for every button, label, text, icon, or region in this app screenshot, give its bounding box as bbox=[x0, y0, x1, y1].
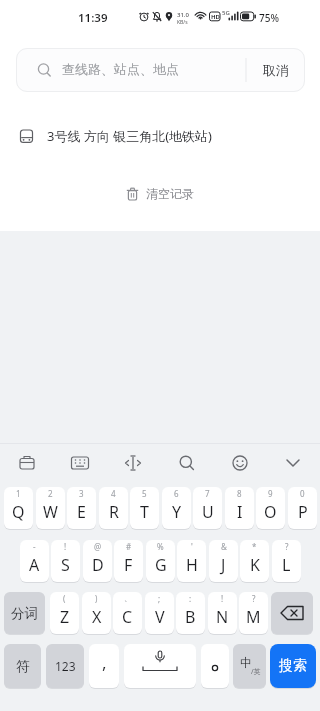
staticText: ! bbox=[64, 541, 67, 552]
staticText: 7 bbox=[205, 488, 210, 499]
staticText: ; bbox=[158, 593, 161, 604]
staticText: N bbox=[216, 606, 229, 628]
staticText: Q bbox=[12, 501, 25, 523]
button[interactable] bbox=[124, 644, 196, 688]
button[interactable]: & bbox=[209, 540, 238, 582]
staticText: * bbox=[252, 541, 257, 552]
staticText: 3号线 方向 银三角北(地铁站) bbox=[47, 127, 212, 145]
staticText: M bbox=[246, 606, 261, 628]
staticText: @ bbox=[94, 541, 102, 552]
staticText: F bbox=[124, 554, 133, 576]
staticText: - bbox=[33, 541, 36, 552]
staticText: 5 bbox=[142, 488, 147, 499]
staticText: T bbox=[140, 501, 149, 523]
button[interactable]: 中 bbox=[233, 644, 266, 688]
button[interactable]: 7 bbox=[193, 487, 222, 529]
staticText: HD bbox=[211, 13, 220, 21]
button[interactable]: 9 bbox=[256, 487, 285, 529]
staticText: J bbox=[221, 554, 226, 576]
button[interactable]: 2 bbox=[36, 487, 65, 529]
staticText: 查线路、站点、地点 bbox=[62, 61, 179, 77]
staticText: 3 bbox=[79, 488, 84, 499]
button[interactable]: * bbox=[240, 540, 269, 582]
staticText: B bbox=[185, 606, 196, 628]
staticText: % bbox=[157, 541, 164, 552]
staticText: 1 bbox=[16, 488, 21, 499]
button[interactable]: 3 bbox=[67, 487, 96, 529]
button[interactable]: ; bbox=[145, 592, 174, 634]
staticText: 中 bbox=[240, 655, 252, 670]
button[interactable]: 搜索 bbox=[270, 644, 316, 688]
button[interactable]: ! bbox=[208, 592, 237, 634]
staticText: /英 bbox=[251, 667, 261, 677]
button[interactable]: # bbox=[114, 540, 143, 582]
button[interactable]: 0 bbox=[288, 487, 317, 529]
staticText: P bbox=[298, 501, 308, 523]
button[interactable]: ! bbox=[51, 540, 80, 582]
staticText: ' bbox=[191, 541, 193, 552]
staticText: 取消 bbox=[263, 62, 289, 78]
button[interactable] bbox=[218, 443, 262, 483]
staticText: 6 bbox=[174, 488, 179, 499]
staticText: 搜索 bbox=[279, 657, 307, 675]
staticText: R bbox=[109, 501, 119, 523]
button[interactable] bbox=[201, 644, 229, 688]
button[interactable]: ) bbox=[82, 592, 111, 634]
button[interactable] bbox=[58, 443, 102, 483]
button[interactable]: 6 bbox=[162, 487, 191, 529]
staticText: V bbox=[155, 606, 165, 628]
button[interactable]: ? bbox=[272, 540, 301, 582]
button[interactable]: ? bbox=[239, 592, 268, 634]
staticText: : bbox=[189, 593, 192, 604]
staticText: 清空记录 bbox=[146, 186, 194, 201]
button[interactable]: ' bbox=[177, 540, 206, 582]
staticText: ? bbox=[285, 541, 289, 552]
staticText: 0 bbox=[300, 488, 305, 499]
staticText: ( bbox=[63, 593, 66, 604]
button[interactable]: ( bbox=[50, 592, 79, 634]
staticText: 31.0 bbox=[177, 11, 189, 19]
button[interactable]: , bbox=[89, 644, 119, 688]
staticText: & bbox=[221, 541, 227, 552]
staticText: , bbox=[102, 651, 107, 674]
button[interactable] bbox=[111, 443, 155, 483]
button[interactable]: - bbox=[20, 540, 49, 582]
staticText: 123 bbox=[55, 658, 76, 674]
staticText: A bbox=[29, 554, 40, 576]
staticText: C bbox=[122, 606, 133, 628]
staticText: X bbox=[92, 606, 102, 628]
button[interactable]: : bbox=[176, 592, 205, 634]
staticText: ) bbox=[95, 593, 98, 604]
staticText: 2 bbox=[48, 488, 53, 499]
button[interactable]: 5 bbox=[130, 487, 159, 529]
staticText: 5G bbox=[222, 9, 230, 17]
button[interactable]: 分词 bbox=[4, 592, 45, 634]
button[interactable]: 1 bbox=[4, 487, 33, 529]
staticText: E bbox=[77, 501, 86, 523]
button[interactable] bbox=[165, 443, 209, 483]
button[interactable]: 清空记录 bbox=[126, 186, 194, 201]
button[interactable]: 8 bbox=[225, 487, 254, 529]
staticText: U bbox=[202, 501, 214, 523]
staticText: Z bbox=[60, 606, 70, 628]
button[interactable] bbox=[5, 443, 49, 483]
button[interactable]: 123 bbox=[46, 644, 84, 688]
button[interactable]: 、 bbox=[113, 592, 142, 634]
button[interactable]: 取消 bbox=[247, 48, 305, 92]
button[interactable] bbox=[271, 592, 313, 634]
button[interactable] bbox=[271, 443, 315, 483]
button[interactable]: 4 bbox=[99, 487, 128, 529]
staticText: # bbox=[126, 541, 132, 552]
button[interactable]: 查线路、站点、地点 bbox=[16, 48, 305, 92]
button[interactable]: @ bbox=[83, 540, 112, 582]
staticText: L bbox=[282, 554, 291, 576]
staticText: 75% bbox=[259, 11, 279, 25]
staticText: O bbox=[264, 501, 277, 523]
staticText: S bbox=[61, 554, 70, 576]
button[interactable]: 3号线 方向 银三角北(地铁站) bbox=[0, 120, 320, 152]
staticText: ! bbox=[221, 593, 224, 604]
staticText: G bbox=[155, 554, 167, 576]
button[interactable]: % bbox=[146, 540, 175, 582]
staticText: K bbox=[250, 554, 260, 576]
button[interactable]: 符 bbox=[4, 644, 41, 688]
